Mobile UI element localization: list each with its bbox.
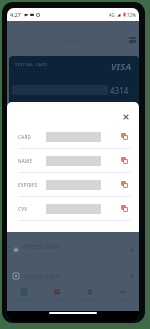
button[interactable]: Transactions	[73, 287, 106, 305]
staticText: VISA	[111, 60, 132, 72]
button[interactable]: EXPIRES	[7, 173, 139, 196]
button[interactable]: Cancel Card	[7, 263, 139, 289]
staticText: More	[118, 297, 128, 302]
staticText: 4314	[110, 85, 129, 96]
button[interactable]: CVV	[7, 197, 139, 220]
button[interactable]: CARD	[7, 125, 139, 148]
staticText: 4:27	[10, 11, 21, 18]
staticText: NAME	[18, 158, 46, 164]
button[interactable]: NAME	[7, 149, 139, 172]
button[interactable]: Copy NAME	[118, 154, 131, 167]
staticText: Card	[66, 37, 80, 45]
staticText: CVV	[18, 206, 46, 212]
staticText: 72%	[127, 12, 136, 18]
button[interactable]: Freeze Card	[7, 237, 139, 263]
button[interactable]: Close	[119, 110, 132, 123]
staticText: Budgets	[16, 297, 32, 302]
button[interactable]: Card	[40, 287, 73, 305]
staticText: VIRTUAL CARD	[15, 62, 48, 67]
staticText: 4G	[109, 12, 115, 18]
button[interactable]: Copy CVV	[118, 202, 131, 215]
button[interactable]: Card settings	[126, 34, 138, 46]
button[interactable]: Copy EXPIRES	[118, 178, 131, 191]
staticText: Cancel Card	[24, 272, 60, 281]
staticText: EXPIRES	[18, 182, 46, 188]
staticText: Freeze Card	[24, 242, 59, 251]
staticText: CARD	[18, 134, 46, 140]
button[interactable]: Budgets	[7, 287, 40, 305]
button[interactable]: Copy CARD	[118, 130, 131, 143]
